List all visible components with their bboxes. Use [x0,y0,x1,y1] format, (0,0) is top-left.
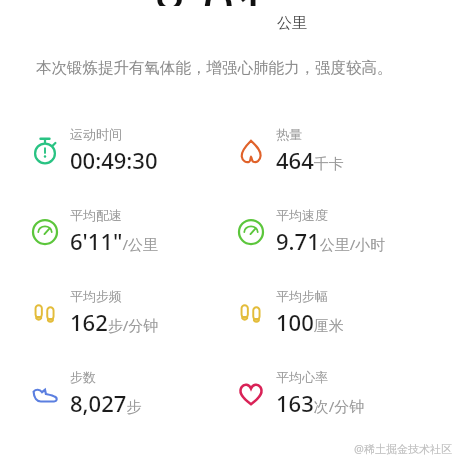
staticText: 8,027步 [70,388,142,418]
button[interactable]: Average speed [236,207,460,256]
staticText: 本次锻炼提升有氧体能，增强心肺能力，强度较高。 [36,58,393,78]
staticText: 163次/分钟 [276,388,365,418]
button[interactable]: Average stride [236,288,460,337]
button[interactable]: Steps [30,369,230,418]
staticText: 9.71公里/小时 [276,226,386,256]
button[interactable]: Average cadence [30,288,230,337]
staticText: 平均速度 [276,207,328,223]
button[interactable]: Calories [236,126,460,175]
staticText: 运动时间 [70,126,122,142]
staticText: 公里 [277,14,307,33]
button[interactable]: Average heart rate [236,369,460,418]
staticText: 464千卡 [276,145,344,175]
staticText: 平均心率 [276,369,328,385]
staticText: 步数 [70,369,96,385]
staticText: 平均步频 [70,288,122,304]
staticText: @稀土掘金技术社区 [354,441,452,456]
button[interactable]: Exercise time [30,126,230,175]
staticText: 6'11"/公里 [70,226,158,256]
staticText: 平均配速 [70,207,122,223]
staticText: 8.01 [153,0,269,6]
staticText: 100厘米 [276,307,344,337]
staticText: 00:49:30 [70,145,158,175]
staticText: 平均步幅 [276,288,328,304]
staticText: 162步/分钟 [70,307,159,337]
button[interactable]: Average pace [30,207,230,256]
staticText: 热量 [276,126,302,142]
